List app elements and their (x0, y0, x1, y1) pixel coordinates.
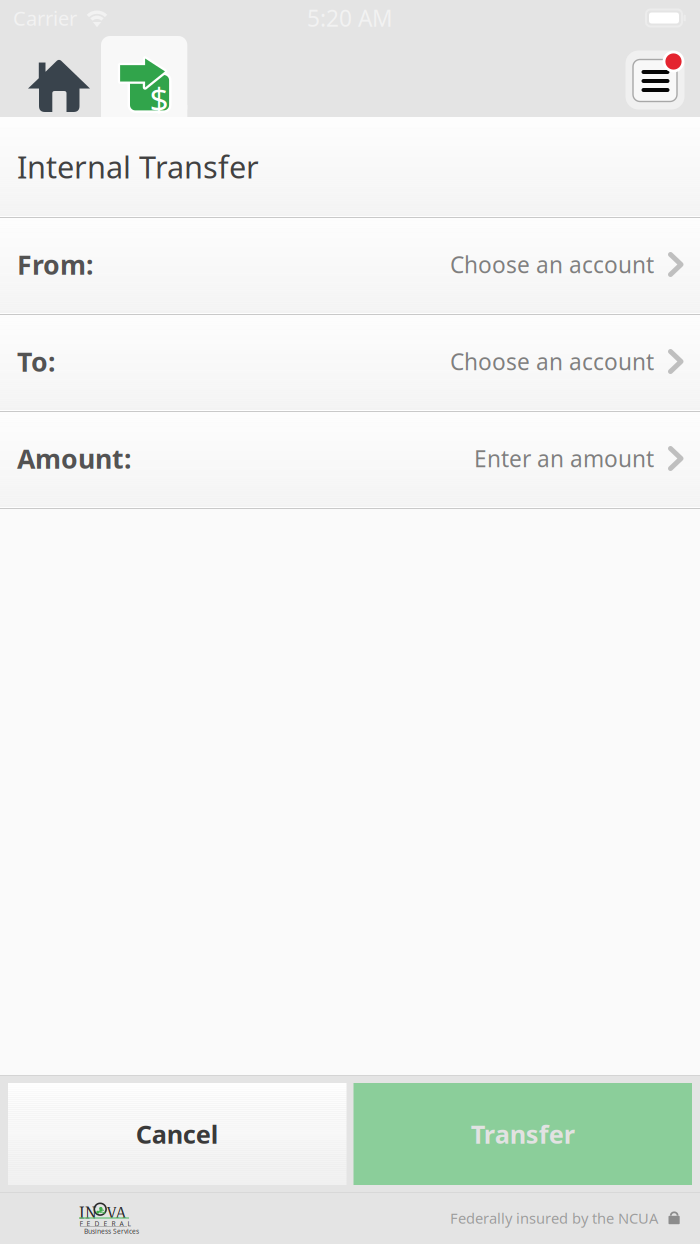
staticText: From: (17, 247, 93, 282)
staticText: Choose an account (450, 346, 654, 376)
staticText: $ (149, 77, 168, 121)
button[interactable]: Home (0, 36, 101, 117)
button[interactable]: Cancel (8, 1083, 346, 1185)
button[interactable]: Transfers (101, 36, 187, 117)
staticText: VA (107, 1202, 127, 1223)
staticText: Federally insured by the NCUA (450, 1208, 658, 1228)
staticText: Carrier (13, 5, 77, 31)
staticText: 5:20 AM (307, 3, 393, 33)
button[interactable]: Menu (625, 36, 700, 117)
staticText: F E D E R A L (79, 1219, 130, 1228)
staticText: Transfer (471, 1117, 575, 1151)
button[interactable]: To: (0, 313, 700, 410)
staticText: Amount: (17, 441, 131, 476)
staticText: Cancel (136, 1117, 219, 1151)
staticText: Choose an account (450, 249, 654, 279)
button[interactable]: From: (0, 216, 700, 313)
staticText: Enter an amount (474, 443, 654, 473)
button[interactable]: Transfer (353, 1083, 692, 1185)
button[interactable]: Amount: (0, 410, 700, 507)
staticText: Business Services (84, 1227, 139, 1236)
staticText: IN (79, 1202, 97, 1223)
staticText: To: (17, 344, 55, 379)
staticText: Internal Transfer (17, 146, 259, 187)
